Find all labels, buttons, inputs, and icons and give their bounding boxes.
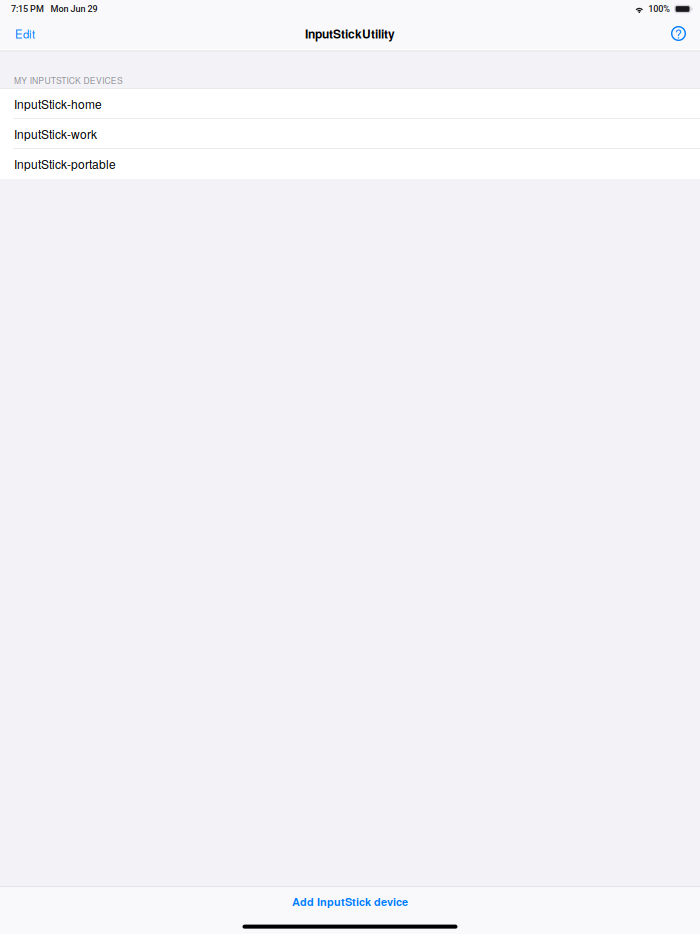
staticText: MY INPUTSTICK DEVICES: [14, 74, 123, 86]
button[interactable]: InputStick-work: [0, 119, 700, 149]
button[interactable]: Help: [657, 18, 700, 49]
staticText: Add InputStick device: [292, 894, 408, 909]
button[interactable]: Add InputStick device: [0, 887, 700, 916]
staticText: InputStick-work: [14, 125, 97, 142]
staticText: Edit: [15, 25, 35, 42]
button[interactable]: Edit: [0, 18, 50, 49]
staticText: InputStick-portable: [14, 155, 116, 172]
staticText: ?: [675, 25, 682, 42]
button[interactable]: InputStick-home: [0, 89, 700, 119]
staticText: 100%: [648, 4, 670, 14]
staticText: InputStick-home: [14, 95, 102, 112]
staticText: InputStickUtility: [305, 25, 395, 42]
staticText: Mon Jun 29: [50, 4, 97, 14]
staticText: 7:15 PM: [11, 4, 44, 14]
button[interactable]: InputStick-portable: [0, 149, 700, 179]
